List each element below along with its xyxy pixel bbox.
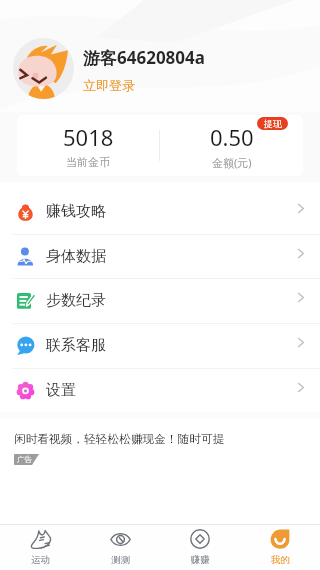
staticText: 提现 xyxy=(264,118,282,129)
button[interactable]: 联系客服 xyxy=(0,323,320,368)
button[interactable]: 步数纪录 xyxy=(0,278,320,323)
button[interactable]: 闲时看视频，轻轻松松赚现金！随时可提 xyxy=(0,419,320,525)
staticText: 联系客服 xyxy=(46,336,106,355)
staticText: 赚钱攻略 xyxy=(46,202,106,221)
button[interactable]: 赚钱攻略 xyxy=(0,189,320,234)
button[interactable]: 提现 xyxy=(257,117,288,130)
button[interactable]: 我的 xyxy=(240,525,320,570)
button[interactable]: 身体数据 xyxy=(0,234,320,279)
staticText: 广告 xyxy=(17,455,32,464)
staticText: 运动 xyxy=(31,554,50,566)
staticText: 游客64620804a xyxy=(83,46,205,69)
staticText: 当前金币 xyxy=(66,155,110,169)
button[interactable]: 设置 xyxy=(0,368,320,413)
staticText: 测测 xyxy=(111,554,130,566)
staticText: 身体数据 xyxy=(46,247,106,266)
button[interactable]: 5018 xyxy=(17,115,159,176)
button[interactable]: 立即登录 xyxy=(83,77,135,93)
other: 我的 xyxy=(270,529,290,549)
other: 赚赚 xyxy=(190,529,210,549)
button[interactable]: 0.50 xyxy=(160,115,303,176)
button[interactable]: 赚赚 xyxy=(160,525,240,570)
staticText: 步数纪录 xyxy=(46,291,106,310)
staticText: 我的 xyxy=(271,554,290,566)
staticText: 闲时看视频，轻轻松松赚现金！随时可提 xyxy=(14,432,225,447)
staticText: 设置 xyxy=(46,381,76,400)
staticText: 0.50 xyxy=(210,122,254,152)
other: 测测 xyxy=(110,531,131,548)
button[interactable]: 测测 xyxy=(80,525,160,570)
staticText: 金额(元) xyxy=(212,155,252,170)
other: 头像 xyxy=(13,38,74,99)
staticText: 赚赚 xyxy=(191,554,210,566)
button[interactable]: 运动 xyxy=(0,525,80,570)
staticText: 5018 xyxy=(63,122,114,152)
other: 运动 xyxy=(30,529,51,549)
